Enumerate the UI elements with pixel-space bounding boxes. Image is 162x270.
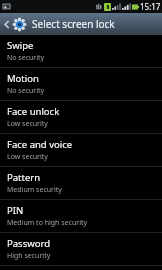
staticText: PIN xyxy=(7,204,24,217)
staticText: Face unlock xyxy=(7,105,60,118)
button[interactable]: Motion xyxy=(0,68,162,100)
staticText: Low security xyxy=(7,119,48,129)
button[interactable]: Pattern xyxy=(0,167,162,199)
staticText: Face and voice xyxy=(7,138,73,151)
staticText: Pattern xyxy=(7,171,41,184)
staticText: 15:17 xyxy=(140,1,161,12)
staticText: Select screen lock xyxy=(32,17,115,31)
staticText: No security xyxy=(7,86,45,96)
button[interactable]: Face unlock xyxy=(0,101,162,133)
staticText: High security xyxy=(7,251,51,261)
staticText: Motion xyxy=(7,72,39,85)
button[interactable]: Navigate up xyxy=(0,13,28,35)
staticText: Password xyxy=(7,237,50,250)
staticText: Medium security xyxy=(7,185,62,195)
staticText: Swipe xyxy=(7,39,34,52)
button[interactable]: Swipe xyxy=(0,35,162,67)
staticText: No security xyxy=(7,53,45,63)
button[interactable]: Password xyxy=(0,233,162,265)
staticText: Low security xyxy=(7,152,48,162)
staticText: Medium to high security xyxy=(7,218,88,228)
button[interactable]: PIN xyxy=(0,200,162,232)
button[interactable]: Face and voice xyxy=(0,134,162,166)
